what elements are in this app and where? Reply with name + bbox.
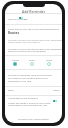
staticText: you want to be notified about this	[8, 76, 48, 79]
staticText: Work	[29, 58, 35, 61]
staticText: What would you like to be reminded about…	[8, 27, 60, 30]
staticText: Notify me when I arrive at this place	[8, 101, 51, 104]
staticText: when you arrive at a destination.	[8, 49, 47, 52]
staticText: Notifications are available for this	[8, 103, 48, 106]
staticText: Home	[12, 58, 19, 61]
staticText: about when you are near it.	[8, 40, 41, 43]
button[interactable]: Choose from saved places	[18, 117, 49, 120]
staticText: Routes	[8, 31, 20, 35]
button[interactable]: Notify me when I arrive at this place	[5, 100, 62, 105]
button[interactable]: Other	[42, 58, 56, 68]
staticText: reminder in the app	[8, 79, 32, 82]
staticText: Choose from saved places	[18, 117, 49, 120]
staticText: Choose a route you would like to be remi…	[8, 38, 62, 41]
button[interactable]: Daily	[5, 88, 62, 92]
staticText: Choose a reminder time and the days	[8, 73, 53, 76]
staticText: Use my location	[8, 17, 27, 20]
button[interactable]: Toggle	[53, 100, 57, 102]
staticText: Choose a route you would like to be remi…	[8, 47, 62, 50]
staticText: Other	[46, 58, 53, 61]
button[interactable]: Home	[8, 58, 22, 68]
button[interactable]: Toggle	[19, 17, 23, 19]
button[interactable]: Use my location	[5, 16, 62, 22]
staticText: Add Reminder	[22, 9, 46, 14]
button[interactable]: Work	[25, 58, 39, 68]
staticText: Daily	[8, 88, 14, 91]
staticText: 09:00	[53, 88, 60, 91]
staticText: Notifications are enabled	[8, 96, 38, 99]
staticText: On	[24, 17, 28, 20]
